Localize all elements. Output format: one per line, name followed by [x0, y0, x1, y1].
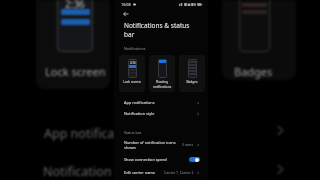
staticText: Badges: [234, 64, 273, 79]
button[interactable]: Floating notifications: [149, 55, 175, 92]
button[interactable]: Show connection speed: [114, 153, 208, 166]
button[interactable]: Notification style: [114, 107, 208, 120]
staticText: Floating notifications: [150, 80, 174, 89]
staticText: Notifications: [124, 46, 146, 51]
staticText: Number of notification icons shown: [124, 140, 182, 150]
button[interactable]: 2:36: [119, 55, 145, 92]
button[interactable]: App notifications: [114, 96, 208, 109]
staticText: App notifica: [44, 125, 115, 142]
staticText: 3 icons: [182, 142, 194, 147]
staticText: Show connection speed: [124, 157, 167, 162]
staticText: Notification: [43, 163, 112, 180]
button[interactable]: Badges: [179, 55, 205, 92]
staticText: Carrier 1, Carrier 2: [164, 170, 194, 175]
staticText: Notifications & status bar: [124, 21, 197, 39]
staticText: App notifications: [124, 100, 155, 105]
staticText: 10:08: [121, 2, 131, 7]
button[interactable]: Back: [120, 8, 132, 20]
button[interactable]: Number of notification icons shown: [114, 137, 208, 152]
button[interactable]: Edit carrier name: [114, 166, 208, 179]
staticText: Lock screen: [120, 80, 144, 84]
staticText: Notification style: [124, 111, 155, 116]
staticText: Lock screen: [45, 64, 106, 79]
staticText: Status bar: [124, 130, 142, 135]
staticText: 2:36: [65, 0, 85, 11]
staticText: 2:36: [130, 61, 136, 65]
staticText: Badges: [180, 80, 204, 84]
staticText: Edit carrier name: [124, 170, 156, 175]
